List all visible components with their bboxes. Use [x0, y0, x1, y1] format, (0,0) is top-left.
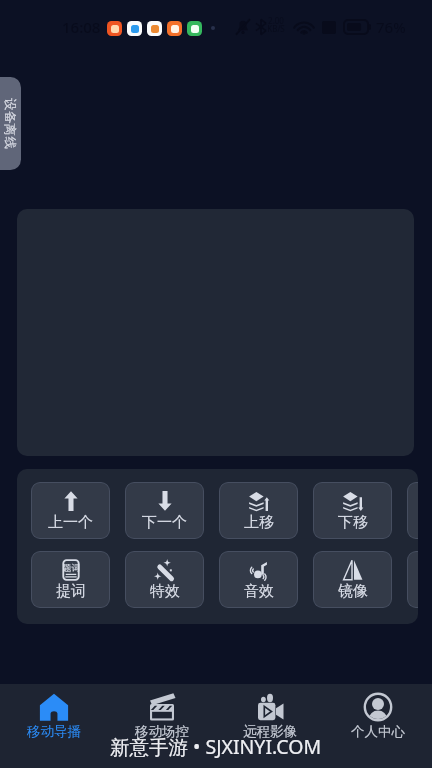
button[interactable]: 个人中心 [324, 684, 432, 768]
staticText: 下移 [338, 513, 368, 532]
staticText: 上移 [244, 513, 274, 532]
staticText: 题词 [63, 563, 80, 574]
button[interactable] [407, 482, 418, 539]
staticText: 移动场控 [135, 723, 189, 740]
staticText: 音效 [244, 582, 274, 601]
button[interactable]: 特效 [125, 551, 204, 608]
button[interactable]: 移动场控 [108, 684, 216, 768]
button[interactable]: 音效 [219, 551, 298, 608]
staticText: 设备离线 [2, 98, 18, 150]
staticText: 特效 [150, 582, 180, 601]
button[interactable]: 上一个 [31, 482, 110, 539]
button[interactable]: 镜像 [313, 551, 392, 608]
button[interactable]: 下移 [313, 482, 392, 539]
staticText: 提词 [56, 582, 86, 601]
button[interactable]: 设备离线 [0, 77, 21, 170]
staticText: 镜像 [338, 582, 368, 601]
staticText: 下一个 [142, 513, 187, 532]
button[interactable] [407, 551, 418, 608]
staticText: 新意手游 • SJXINYI.COM [110, 733, 322, 760]
staticText: 远程影像 [243, 723, 297, 740]
staticText: 移动导播 [27, 723, 81, 740]
staticText: 上一个 [48, 513, 93, 532]
button[interactable]: 下一个 [125, 482, 204, 539]
button[interactable]: 移动导播 [0, 684, 108, 768]
button[interactable]: 上移 [219, 482, 298, 539]
staticText: 个人中心 [351, 723, 405, 740]
button[interactable]: 远程影像 [216, 684, 324, 768]
button[interactable]: 题词 [31, 551, 110, 608]
